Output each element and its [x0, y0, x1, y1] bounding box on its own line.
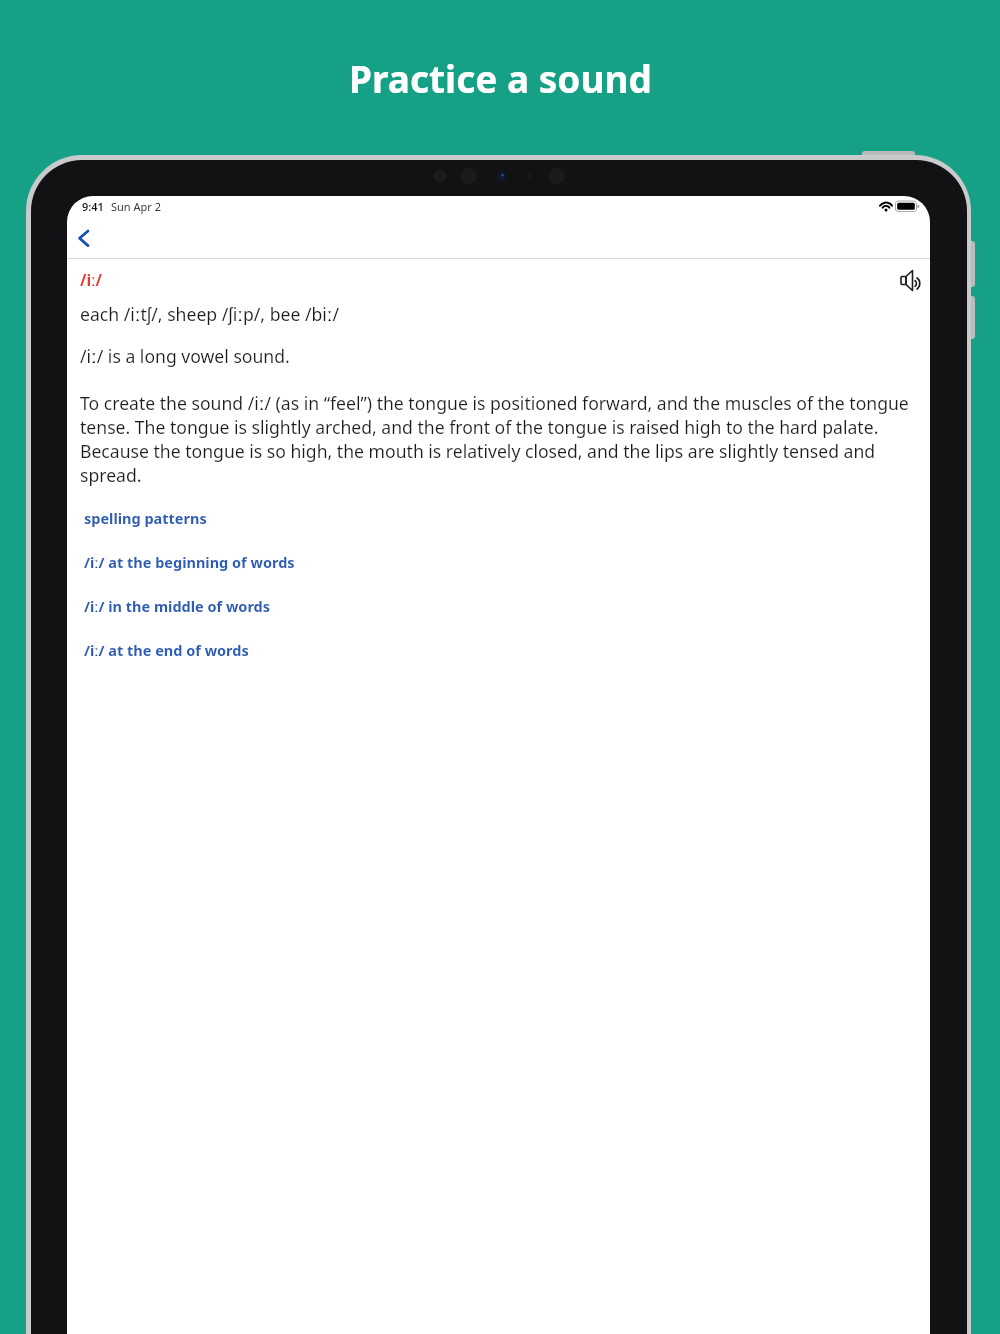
staticText: spelling patterns — [84, 508, 207, 528]
staticText: /iː/ is a long vowel sound. — [80, 344, 290, 368]
staticText: To create the sound /iː/ (as in “feel”) … — [80, 391, 930, 487]
staticText: /iː/ at the end of words — [84, 640, 249, 660]
button[interactable]: /iː/ at the end of words — [80, 636, 245, 656]
staticText: /iː/ — [80, 269, 102, 290]
button[interactable]: /iː/ in the middle of words — [80, 592, 267, 612]
staticText: /iː/ at the beginning of words — [84, 552, 295, 572]
button[interactable] — [897, 267, 925, 293]
staticText: /iː/ in the middle of words — [84, 596, 271, 616]
staticText: each /iːtʃ/, sheep /ʃiːp/, bee /biː/ — [80, 302, 339, 326]
button[interactable]: /iː/ at the beginning of words — [80, 548, 291, 568]
button[interactable]: spelling patterns — [80, 504, 203, 524]
button[interactable] — [71, 222, 99, 254]
staticText: Sun Apr 2 — [111, 199, 161, 214]
staticText: Practice a sound — [349, 53, 652, 103]
staticText: 9:41 — [82, 199, 104, 214]
